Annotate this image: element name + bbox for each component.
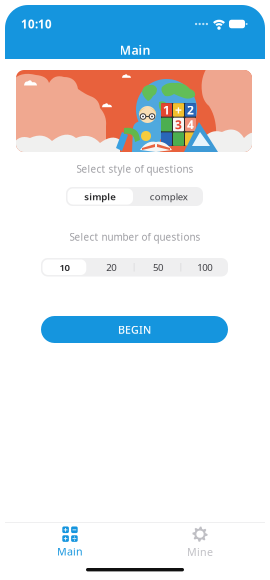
staticText: 4 bbox=[187, 116, 194, 132]
button[interactable]: 50 bbox=[134, 258, 181, 276]
button[interactable]: Mine bbox=[135, 526, 265, 559]
staticText: Main bbox=[119, 42, 150, 58]
staticText: 10 bbox=[59, 261, 69, 274]
button[interactable]: 20 bbox=[88, 258, 135, 276]
button[interactable]: simple bbox=[66, 187, 134, 206]
staticText: Select style of questions bbox=[76, 162, 193, 176]
staticText: 100 bbox=[197, 261, 212, 274]
staticText: Mine bbox=[187, 545, 213, 559]
staticText: 1 bbox=[163, 102, 170, 118]
staticText: simple bbox=[84, 190, 116, 203]
button[interactable]: 10 bbox=[41, 258, 88, 276]
staticText: 3 bbox=[175, 116, 182, 132]
staticText: Select number of questions bbox=[69, 230, 200, 244]
button[interactable]: Main bbox=[5, 526, 135, 559]
staticText: 50 bbox=[153, 261, 163, 274]
staticText: 20 bbox=[106, 261, 116, 274]
button[interactable]: 100 bbox=[181, 258, 228, 276]
staticText: BEGIN bbox=[118, 322, 151, 337]
button[interactable]: complex bbox=[134, 187, 203, 206]
button[interactable]: BEGIN bbox=[41, 316, 228, 343]
staticText: 10:10 bbox=[21, 16, 52, 32]
staticText: complex bbox=[150, 190, 188, 203]
staticText: 2 bbox=[187, 102, 194, 118]
staticText: + bbox=[175, 102, 182, 118]
staticText: Main bbox=[57, 544, 83, 559]
